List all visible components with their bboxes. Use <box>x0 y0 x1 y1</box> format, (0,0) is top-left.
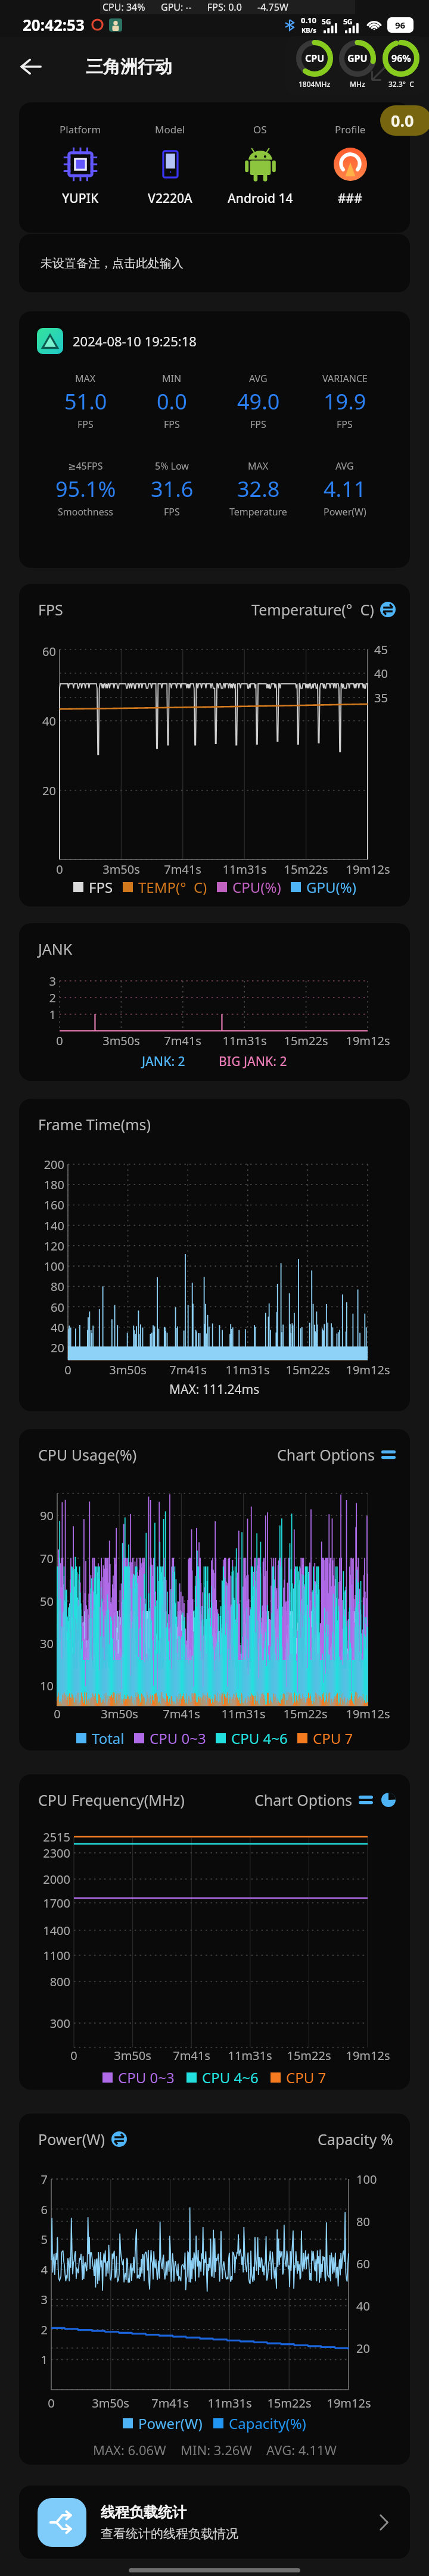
button[interactable]: Swap axis <box>380 602 396 617</box>
staticText: CPU 4~6 <box>231 1728 288 1748</box>
staticText: 90 <box>40 1508 54 1524</box>
staticText: 11m31s <box>228 2047 272 2063</box>
staticText: 19m12s <box>346 1033 390 1048</box>
staticText: 2 <box>41 2322 48 2338</box>
staticText: JANK <box>38 939 73 959</box>
staticText: Temperature <box>229 505 287 518</box>
staticText: 40 <box>51 1320 64 1336</box>
button[interactable]: Chart options <box>381 1448 396 1462</box>
button[interactable]: Pie chart <box>381 1793 396 1807</box>
staticText: 2300 <box>43 1845 70 1861</box>
staticText: 2024-08-10 19:25:18 <box>73 332 197 350</box>
staticText: 11m31s <box>221 1706 266 1721</box>
staticText: Power(W) <box>38 2129 105 2149</box>
staticText: 7m41s <box>163 1706 200 1721</box>
staticText: 7 <box>41 2171 48 2187</box>
staticText: 160 <box>43 1197 64 1213</box>
staticText: 80 <box>356 2214 370 2230</box>
staticText: 32.8 <box>237 474 280 504</box>
staticText: 11m31s <box>225 1362 270 1377</box>
staticText: 15m22s <box>284 1033 328 1048</box>
staticText: 15m22s <box>287 2047 331 2063</box>
staticText: YUPIK <box>62 190 99 207</box>
staticText: 未设置备注，点击此处输入 <box>41 256 184 271</box>
staticText: Android 14 <box>228 190 293 207</box>
staticText: 7m41s <box>164 861 201 877</box>
staticText: Model <box>155 123 185 136</box>
staticText: CPU Usage(%) <box>38 1445 137 1465</box>
staticText: FPS: 0.0 <box>207 1 242 14</box>
staticText: V2220A <box>148 190 192 207</box>
staticText: Power(W) <box>324 505 366 518</box>
staticText: 3m50s <box>92 2395 129 2411</box>
staticText: 2000 <box>43 1871 70 1887</box>
staticText: 三角洲行动 <box>86 56 172 78</box>
staticText: 1400 <box>43 1922 70 1939</box>
staticText: 20 <box>356 2340 370 2356</box>
staticText: 5% Low <box>155 459 189 473</box>
button[interactable]: Back <box>14 50 48 83</box>
staticText: 19m12s <box>346 1362 390 1377</box>
staticText: 15m22s <box>284 861 328 877</box>
staticText: 60 <box>356 2256 370 2272</box>
staticText: 2515 <box>43 1829 70 1845</box>
staticText: 3m50s <box>102 1033 140 1048</box>
staticText: 20:42:53 <box>23 14 85 35</box>
staticText: JANK: 2 <box>142 1053 185 1070</box>
staticText: 49.0 <box>237 387 280 416</box>
staticText: GPU: -- <box>161 1 192 14</box>
staticText: 0.0 <box>157 387 187 416</box>
staticText: 180 <box>43 1177 64 1193</box>
staticText: Temperature(° C) <box>251 599 374 620</box>
staticText: GPU <box>347 52 368 65</box>
button[interactable]: 线程负载统计 <box>19 2486 410 2559</box>
staticText: 3m50s <box>102 861 140 877</box>
staticText: 45 <box>374 642 388 658</box>
staticText: CPU(%) <box>232 877 281 897</box>
staticText: Smoothness <box>58 505 114 518</box>
staticText: 20 <box>51 1340 64 1356</box>
button[interactable]: 0.0 <box>380 105 429 136</box>
staticText: 19m12s <box>327 2395 371 2411</box>
staticText: CPU 0~3 <box>150 1728 206 1748</box>
staticText: MAX: 111.24ms <box>169 1381 260 1398</box>
staticText: 100 <box>43 1258 64 1274</box>
staticText: TEMP(° C) <box>138 877 207 897</box>
staticText: 15m22s <box>285 1362 330 1377</box>
staticText: CPU 7 <box>313 1728 353 1748</box>
staticText: FPS <box>164 418 180 431</box>
staticText: -4.75W <box>257 1 288 14</box>
staticText: 15m22s <box>267 2395 312 2411</box>
staticText: ≥45FPS <box>68 459 103 473</box>
staticText: Power(W) <box>138 2414 203 2433</box>
staticText: 19m12s <box>346 861 390 877</box>
button[interactable]: CPU <box>285 36 428 95</box>
staticText: 40 <box>356 2298 370 2314</box>
staticText: Profile <box>335 123 366 136</box>
staticText: CPU 7 <box>286 2068 327 2087</box>
button[interactable]: Chart options <box>359 1793 373 1807</box>
button[interactable]: Swap axis <box>111 2131 127 2147</box>
staticText: 40 <box>42 713 56 729</box>
staticText: 0 <box>48 2395 55 2411</box>
staticText: 50 <box>40 1593 54 1609</box>
staticText: VARIANCE <box>322 372 368 385</box>
staticText: MAX <box>248 459 269 473</box>
staticText: 1700 <box>43 1895 70 1911</box>
staticText: Platform <box>60 123 101 136</box>
staticText: Capacity(%) <box>229 2414 306 2433</box>
staticText: 3m50s <box>109 1362 147 1377</box>
staticText: 60 <box>42 643 56 659</box>
staticText: FPS <box>38 599 63 620</box>
staticText: 0.0 <box>391 110 414 132</box>
staticText: 3 <box>49 973 56 989</box>
staticText: 70 <box>40 1550 54 1567</box>
staticText: Chart Options <box>254 1790 353 1810</box>
staticText: 0 <box>70 2047 77 2063</box>
staticText: 1 <box>49 1006 56 1023</box>
staticText: FPS <box>164 505 180 518</box>
staticText: 30 <box>40 1636 54 1652</box>
staticText: 1100 <box>43 1947 70 1964</box>
staticText: AVG <box>335 459 354 473</box>
staticText: 96% <box>391 52 411 65</box>
